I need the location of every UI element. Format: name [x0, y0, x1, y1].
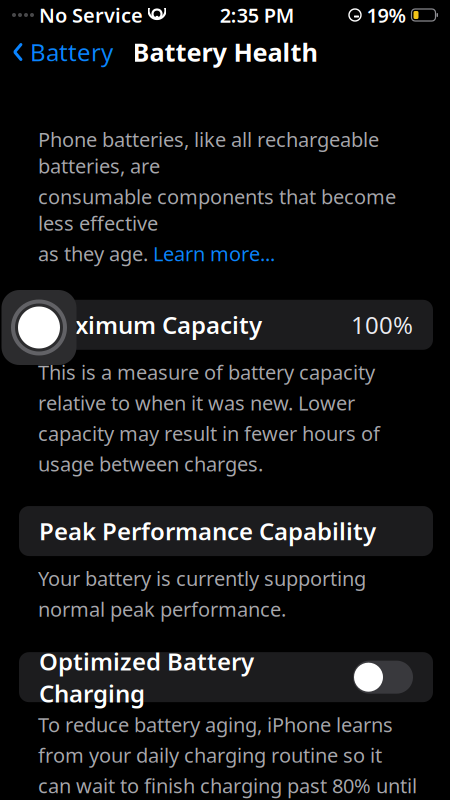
staticText: Your battery is currently supporting nor… — [38, 565, 366, 622]
staticText: 19% — [366, 2, 406, 28]
staticText: Peak Performance Capability — [39, 515, 376, 547]
staticText: as they age. — [38, 240, 153, 267]
staticText: Learn more... — [153, 240, 275, 267]
staticText: consumable components that become less e… — [38, 183, 396, 236]
staticText: 100% — [351, 309, 413, 341]
staticText: Maximum Capacity — [39, 309, 262, 341]
staticText: Phone batteries, like all rechargeable b… — [38, 126, 379, 179]
staticText: 2:35 PM — [220, 2, 295, 28]
staticText: Optimized Battery Charging — [39, 645, 254, 709]
button[interactable]: Peak Performance Capability — [19, 506, 433, 556]
button[interactable]: AssistiveTouch — [1, 290, 76, 365]
staticText: Battery — [30, 36, 113, 68]
staticText: This is a measure of battery capacity re… — [38, 359, 380, 477]
staticText: Battery Health — [132, 35, 317, 69]
staticText: No Service — [39, 2, 143, 28]
button[interactable]: Learn more... — [153, 240, 275, 267]
button[interactable]: Maximum Capacity — [19, 300, 433, 350]
staticText: To reduce battery aging, iPhone learns f… — [38, 711, 417, 800]
button[interactable]: Battery — [0, 30, 113, 74]
button[interactable]: Optimized Battery Charging — [19, 652, 433, 702]
